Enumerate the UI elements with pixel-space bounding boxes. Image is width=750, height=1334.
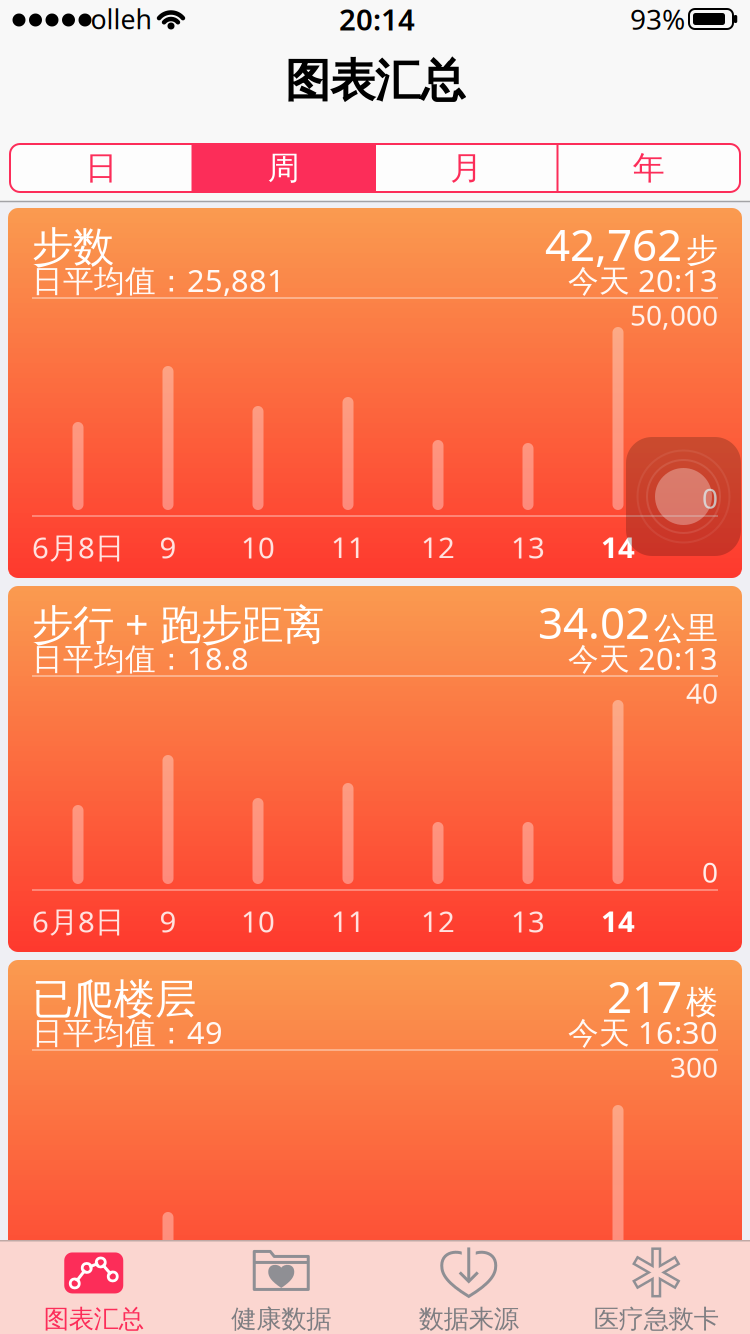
staticText: 步行 + 跑步距离 (32, 596, 324, 651)
staticText: 日 (85, 148, 117, 188)
staticText: 6月8日 (32, 527, 124, 566)
staticText: 步数 (32, 222, 114, 273)
staticText: 图表汇总 (285, 53, 465, 109)
button[interactable]: 已爬楼层 (8, 960, 742, 1334)
staticText: 今天 16:30 (568, 1012, 718, 1052)
button[interactable]: 年 (557, 144, 740, 192)
staticText: 周 (268, 148, 300, 188)
staticText: 12 (421, 901, 455, 940)
staticText: 步 (686, 231, 718, 270)
staticText: 13 (511, 527, 545, 566)
staticText: 10 (241, 901, 275, 940)
staticText: 13 (511, 901, 545, 940)
staticText: 42,762 (545, 215, 682, 273)
button[interactable]: 健康数据 (187, 1248, 375, 1334)
staticText: 14 (601, 527, 635, 566)
staticText: 日平均值：49 (32, 1012, 223, 1052)
staticText: 楼 (686, 983, 718, 1022)
staticText: olleh (90, 1, 151, 37)
staticText: 50,000 (630, 296, 718, 334)
staticText: 医疗急救卡 (594, 1303, 719, 1334)
staticText: 6月8日 (32, 901, 124, 940)
staticText: 11 (331, 527, 365, 566)
staticText: 今天 20:13 (568, 260, 718, 300)
staticText: 健康数据 (231, 1303, 331, 1334)
button[interactable]: 步行 + 跑步距离 (8, 586, 742, 952)
staticText: 0 (702, 479, 718, 517)
staticText: 9 (159, 527, 176, 566)
staticText: 12 (421, 527, 455, 566)
button[interactable]: AssistiveTouch (626, 437, 741, 556)
staticText: 图表汇总 (44, 1303, 144, 1334)
staticText: 已爬楼层 (32, 974, 196, 1025)
button[interactable]: 月 (375, 144, 557, 192)
staticText: 10 (241, 527, 275, 566)
staticText: 日平均值：18.8 (32, 638, 249, 678)
staticText: 93% (630, 0, 685, 38)
button[interactable]: 周 (192, 144, 375, 192)
button[interactable]: 图表汇总 (0, 1248, 187, 1334)
staticText: 年 (633, 148, 665, 188)
staticText: 月 (450, 148, 482, 188)
staticText: 20:14 (339, 0, 415, 38)
staticText: 公里 (654, 609, 718, 648)
staticText: 数据来源 (419, 1303, 519, 1334)
button[interactable]: 医疗急救卡 (562, 1248, 750, 1334)
staticText: 0 (702, 853, 718, 891)
staticText: 9 (159, 901, 176, 940)
button[interactable]: 日 (10, 144, 192, 192)
staticText: 11 (331, 901, 365, 940)
staticText: 今天 20:13 (568, 638, 718, 678)
staticText: 217 (607, 967, 682, 1025)
staticText: 34.02 (538, 593, 650, 651)
staticText: 40 (686, 674, 718, 712)
staticText: 14 (601, 901, 635, 940)
staticText: 300 (670, 1048, 718, 1086)
button[interactable]: 数据来源 (375, 1248, 562, 1334)
staticText: 日平均值：25,881 (32, 260, 285, 300)
button[interactable]: 步数 (8, 208, 742, 578)
